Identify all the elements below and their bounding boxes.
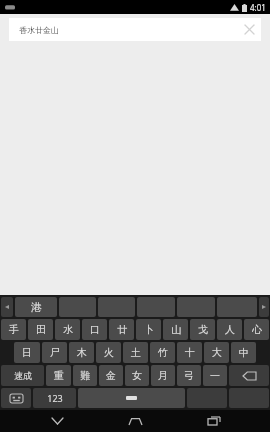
- button[interactable]: Backspace: [229, 365, 269, 386]
- button[interactable]: 中: [231, 342, 256, 363]
- staticText: 十: [185, 346, 195, 359]
- staticText: 一: [210, 369, 220, 382]
- staticText: 大: [212, 346, 222, 359]
- button[interactable]: Back: [35, 410, 79, 432]
- button[interactable]: 尸: [42, 342, 67, 363]
- button[interactable]: Home: [113, 410, 157, 432]
- button[interactable]: 一: [203, 365, 227, 386]
- button[interactable]: 口: [82, 319, 107, 340]
- button[interactable]: 日: [14, 342, 40, 363]
- staticText: 速成: [14, 370, 32, 381]
- button[interactable]: [259, 297, 269, 317]
- button[interactable]: 十: [177, 342, 202, 363]
- staticText: 日: [22, 346, 32, 359]
- button[interactable]: 田: [28, 319, 53, 340]
- staticText: 港: [31, 300, 42, 314]
- button[interactable]: 123: [33, 388, 76, 408]
- button[interactable]: 月: [151, 365, 175, 386]
- staticText: 戈: [198, 323, 208, 336]
- button[interactable]: [1, 297, 13, 317]
- staticText: 弓: [184, 369, 194, 382]
- staticText: 口: [90, 323, 100, 336]
- button[interactable]: 香水廿金山: [9, 18, 261, 41]
- staticText: 火: [104, 346, 114, 359]
- staticText: 廿: [117, 323, 127, 336]
- button[interactable]: 港: [15, 297, 57, 317]
- button[interactable]: 重: [46, 365, 71, 386]
- button[interactable]: 難: [73, 365, 97, 386]
- button[interactable]: 大: [204, 342, 229, 363]
- staticText: 月: [158, 369, 168, 382]
- button[interactable]: 火: [96, 342, 121, 363]
- button[interactable]: 卜: [136, 319, 161, 340]
- button[interactable]: Recents: [192, 410, 236, 432]
- staticText: 123: [47, 392, 63, 404]
- button[interactable]: 人: [217, 319, 242, 340]
- staticText: 水: [63, 323, 73, 336]
- button[interactable]: 速成: [1, 365, 44, 386]
- staticText: 木: [77, 346, 87, 359]
- staticText: 竹: [158, 346, 168, 359]
- button[interactable]: 廿: [109, 319, 134, 340]
- staticText: 卜: [144, 323, 154, 336]
- staticText: 心: [252, 323, 262, 336]
- staticText: 中: [239, 346, 249, 359]
- staticText: 人: [225, 323, 235, 336]
- button[interactable]: Space: [78, 388, 185, 408]
- button[interactable]: 女: [125, 365, 149, 386]
- button[interactable]: 山: [163, 319, 188, 340]
- staticText: 4:01: [250, 2, 266, 13]
- button[interactable]: 水: [55, 319, 80, 340]
- button[interactable]: Switch keyboard: [1, 388, 31, 408]
- staticText: 重: [54, 369, 64, 382]
- button[interactable]: 木: [69, 342, 94, 363]
- button[interactable]: 心: [244, 319, 269, 340]
- staticText: 手: [9, 323, 19, 336]
- button[interactable]: 戈: [190, 319, 215, 340]
- staticText: 尸: [50, 346, 60, 359]
- staticText: 難: [80, 369, 90, 382]
- button[interactable]: 竹: [150, 342, 175, 363]
- button[interactable]: 弓: [177, 365, 201, 386]
- button[interactable]: 手: [1, 319, 26, 340]
- staticText: 山: [171, 323, 181, 336]
- button[interactable]: Clear: [237, 18, 261, 41]
- staticText: 女: [132, 369, 142, 382]
- staticText: 香水廿金山: [19, 25, 237, 35]
- button[interactable]: 土: [123, 342, 148, 363]
- staticText: 田: [36, 323, 46, 336]
- button[interactable]: 金: [99, 365, 123, 386]
- staticText: 土: [131, 346, 141, 359]
- staticText: 金: [106, 369, 116, 382]
